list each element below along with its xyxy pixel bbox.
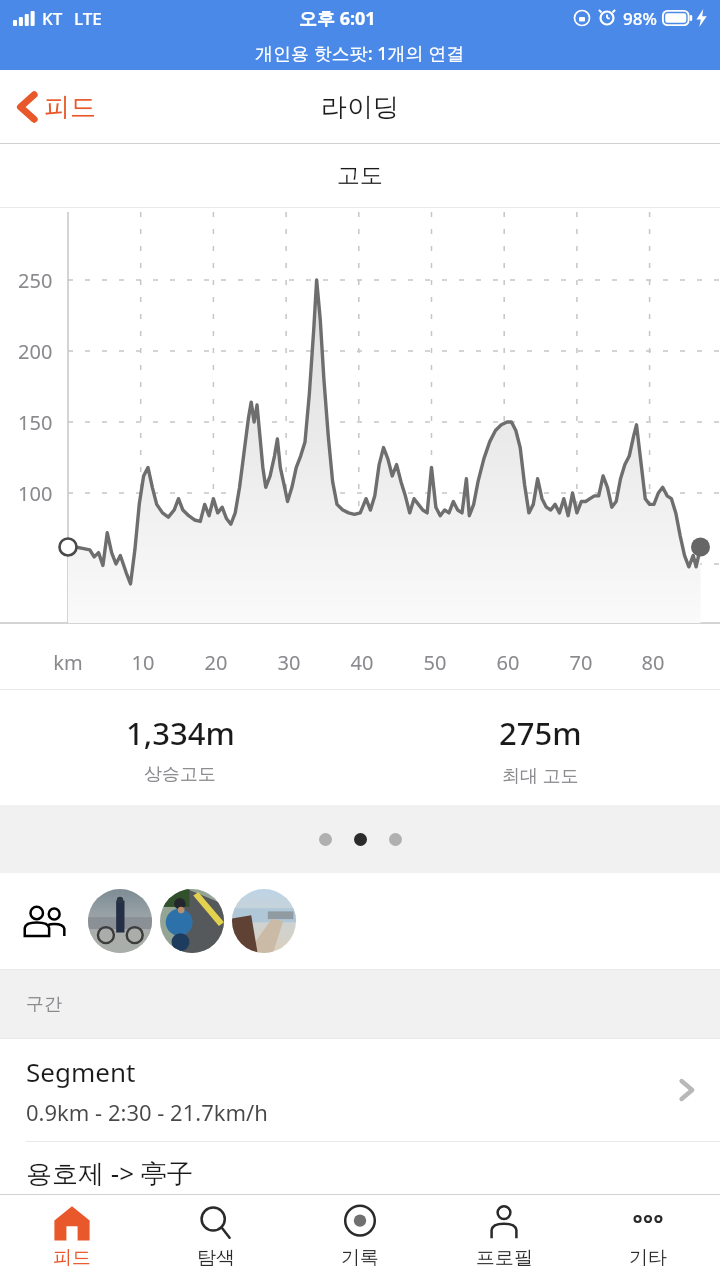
staticText: 10 <box>128 649 158 676</box>
staticText: Segment <box>26 1054 136 1089</box>
staticText: 구간 <box>26 993 62 1016</box>
staticText: 150 <box>18 409 53 436</box>
staticText: 기록 <box>341 1246 379 1270</box>
staticText: 30 <box>274 649 304 676</box>
staticText: 20 <box>201 649 231 676</box>
staticText: 기타 <box>629 1246 667 1270</box>
staticText: 70 <box>566 649 596 676</box>
staticText: 오후 6:01 <box>299 6 376 31</box>
staticText: KT <box>42 7 63 30</box>
staticText: 275m <box>499 712 582 754</box>
staticText: 40 <box>347 649 377 676</box>
staticText: 라이딩 <box>321 91 399 124</box>
button[interactable]: Athlete photo <box>160 889 224 953</box>
staticText: km <box>53 649 83 676</box>
staticText: 50 <box>420 649 450 676</box>
button[interactable] <box>319 833 332 846</box>
button[interactable]: 기타 <box>576 1195 720 1280</box>
button[interactable]: 용호제 -> 亭子 <box>0 1142 720 1190</box>
staticText: 60 <box>493 649 523 676</box>
button[interactable] <box>354 833 367 846</box>
button[interactable]: 피드 <box>0 80 112 134</box>
staticText: 0.9km - 2:30 - 21.7km/h <box>26 1097 268 1127</box>
button[interactable]: Athlete photo <box>88 889 152 953</box>
staticText: 개인용 핫스팟: 1개의 연결 <box>255 41 465 66</box>
staticText: 250 <box>18 267 53 294</box>
button[interactable]: Athlete photo <box>232 889 296 953</box>
staticText: 최대 고도 <box>502 763 579 788</box>
staticText: 200 <box>18 338 53 365</box>
button[interactable]: 프로필 <box>432 1195 576 1280</box>
staticText: 100 <box>18 480 53 507</box>
staticText: 80 <box>638 649 668 676</box>
staticText: 1,334m <box>126 712 235 754</box>
staticText: 탐색 <box>197 1246 235 1270</box>
button[interactable]: Participants <box>0 873 720 969</box>
staticText: 고도 <box>337 161 383 190</box>
staticText: 피드 <box>44 91 96 124</box>
button[interactable]: 탐색 <box>144 1195 288 1280</box>
staticText: 상승고도 <box>144 763 216 786</box>
staticText: 피드 <box>53 1246 91 1270</box>
button[interactable]: 기록 <box>288 1195 432 1280</box>
staticText: LTE <box>74 7 102 30</box>
staticText: 용호제 -> 亭子 <box>26 1155 193 1190</box>
button[interactable]: Segment <box>0 1039 720 1141</box>
button[interactable]: 피드 <box>0 1195 144 1280</box>
button[interactable] <box>389 833 402 846</box>
staticText: 98% <box>623 7 657 30</box>
other: Participants <box>22 905 68 937</box>
staticText: 프로필 <box>476 1246 533 1270</box>
